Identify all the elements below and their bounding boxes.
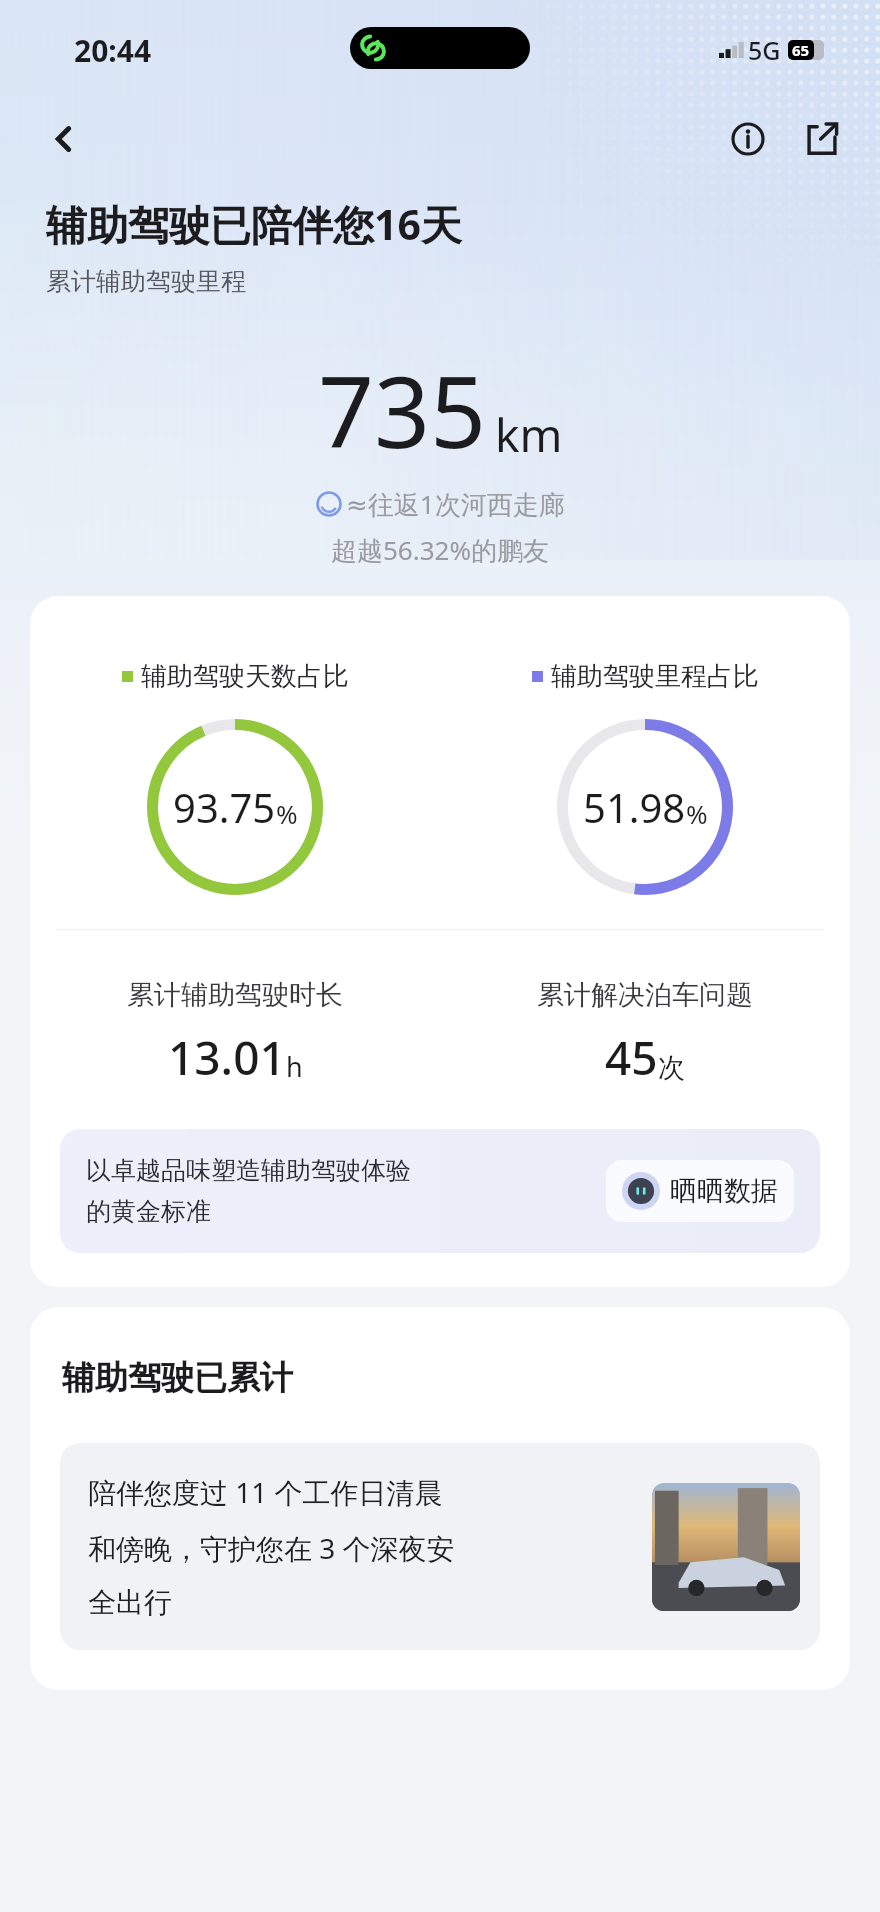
staticText: 和傍晚，守护您在 3 个深夜安 xyxy=(88,1529,455,1567)
staticText: 5G xyxy=(748,33,781,67)
staticText: % xyxy=(686,796,708,831)
staticText: 以卓越品味塑造辅助驾驶体验 xyxy=(86,1155,411,1186)
button[interactable]: Info xyxy=(722,113,774,165)
staticText: 辅助驾驶已陪伴您16天 xyxy=(46,196,462,252)
staticText: 辅助驾驶里程占比 xyxy=(551,660,759,693)
staticText: 累计辅助驾驶里程 xyxy=(46,266,246,297)
button[interactable]: Back xyxy=(40,115,88,163)
staticText: 晒晒数据 xyxy=(670,1174,778,1208)
staticText: 20:44 xyxy=(74,30,152,71)
staticText: 辅助驾驶已累计 xyxy=(62,1357,293,1399)
button[interactable]: Share xyxy=(796,113,848,165)
button[interactable]: 辅助驾驶已累计 xyxy=(30,1307,850,1690)
staticText: 辅助驾驶天数占比 xyxy=(141,660,349,693)
staticText: 累计解决泊车问题 xyxy=(537,978,753,1012)
staticText: 的黄金标准 xyxy=(86,1196,211,1227)
staticText: % xyxy=(276,796,298,831)
staticText: 45 xyxy=(605,1026,658,1089)
staticText: 超越56.32%的鹏友 xyxy=(331,532,550,568)
button[interactable]: 辅助驾驶天数占比 xyxy=(30,596,850,1287)
staticText: 93.75 xyxy=(173,780,276,834)
staticText: km xyxy=(495,403,563,466)
staticText: 累计辅助驾驶时长 xyxy=(127,978,343,1012)
staticText: 次 xyxy=(658,1051,685,1085)
staticText: 51.98 xyxy=(583,780,686,834)
staticText: 陪伴您度过 11 个工作日清晨 xyxy=(88,1473,443,1511)
staticText: 65 xyxy=(792,40,810,60)
staticText: h xyxy=(286,1048,303,1085)
button[interactable]: 晒晒数据 xyxy=(622,1172,778,1210)
staticText: ≈往返1次河西走廊 xyxy=(346,486,565,522)
staticText: 13.01 xyxy=(168,1026,286,1089)
staticText: 全出行 xyxy=(88,1585,172,1620)
staticText: 735 xyxy=(318,343,487,476)
